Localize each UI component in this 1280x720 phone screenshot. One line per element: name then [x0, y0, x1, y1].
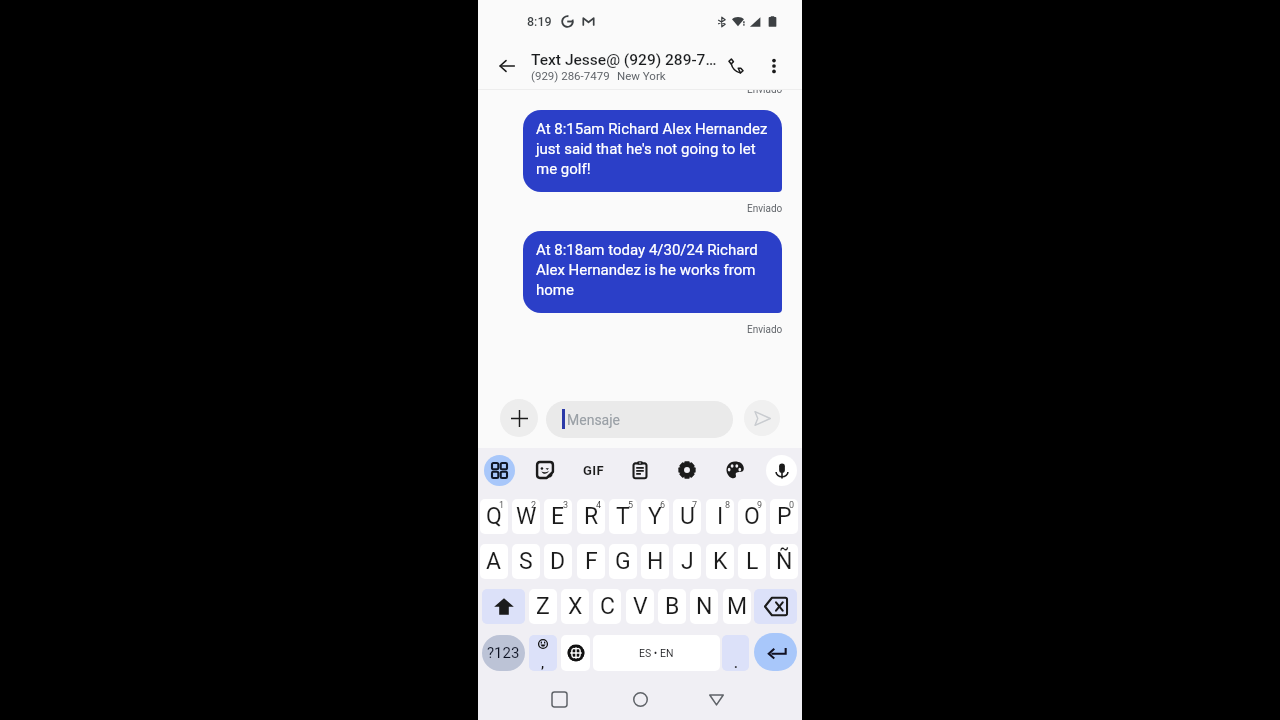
button[interactable]: GIF [578, 455, 608, 485]
staticText: 1 [499, 500, 505, 511]
button[interactable]: U [673, 499, 701, 534]
staticText: Ñ [776, 548, 793, 575]
button[interactable]: G [609, 544, 637, 579]
button[interactable]: Clipboard [625, 455, 655, 485]
staticText: New York [617, 69, 666, 82]
staticText: Mensaje [567, 412, 620, 428]
button[interactable]: Attach [500, 399, 538, 437]
button[interactable]: Shift [482, 589, 525, 624]
staticText: Enviado [747, 324, 783, 336]
button[interactable]: Ñ [770, 544, 798, 579]
button[interactable]: ES • EN [593, 635, 720, 671]
staticText: Z [536, 593, 550, 620]
button[interactable]: Home [623, 682, 657, 716]
button[interactable]: W [512, 499, 540, 534]
button[interactable]: Y [641, 499, 669, 534]
staticText: S [519, 548, 533, 575]
staticText: G [615, 548, 631, 575]
button[interactable]: F [577, 544, 605, 579]
button[interactable]: Sticker [530, 455, 560, 485]
button[interactable]: S [512, 544, 540, 579]
button[interactable]: N [690, 589, 718, 624]
button[interactable]: L [738, 544, 766, 579]
staticText: F [585, 548, 598, 575]
staticText: E [551, 503, 565, 530]
button[interactable]: Recents [542, 682, 576, 716]
button[interactable]: Backspace [754, 589, 797, 624]
button[interactable]: Q [480, 499, 508, 534]
staticText: 4 [596, 500, 602, 511]
staticText: 6 [660, 500, 666, 511]
staticText: T [616, 503, 630, 530]
staticText: M [727, 593, 748, 620]
staticText: . [734, 656, 738, 671]
staticText: At 8:18am today 4/30/24 Richard Alex Her… [536, 241, 771, 299]
staticText: I [717, 503, 724, 530]
button[interactable]: Settings [672, 455, 702, 485]
button[interactable]: H [641, 544, 669, 579]
button[interactable]: Emoji [529, 635, 557, 671]
button[interactable]: J [673, 544, 701, 579]
staticText: L [746, 548, 759, 575]
staticText: K [713, 548, 728, 575]
button[interactable]: X [561, 589, 589, 624]
button[interactable]: O [738, 499, 766, 534]
button[interactable]: K [706, 544, 734, 579]
staticText: 5 [628, 500, 634, 511]
staticText: J [681, 548, 694, 575]
staticText: W [516, 503, 537, 530]
button[interactable]: P [770, 499, 798, 534]
staticText: O [744, 503, 760, 530]
staticText: U [680, 503, 695, 530]
staticText: H [647, 548, 664, 575]
staticText: C [600, 593, 615, 620]
staticText: 3 [563, 500, 569, 511]
button[interactable]: D [544, 544, 572, 579]
staticText: N [696, 593, 713, 620]
button[interactable]: Send [744, 400, 780, 436]
staticText: Enviado [747, 203, 783, 215]
button[interactable]: Voice input [766, 455, 797, 486]
staticText: A [486, 548, 502, 575]
button[interactable]: B [658, 589, 686, 624]
button[interactable]: T [609, 499, 637, 534]
button[interactable]: Z [529, 589, 557, 624]
staticText: Text Jesse@ (929) 289-7... [531, 51, 717, 69]
button[interactable]: At 8:15am Richard Alex Hernandez just sa… [523, 110, 782, 192]
button[interactable]: Enter [754, 633, 797, 671]
staticText: 0 [789, 500, 795, 511]
button[interactable]: ?123 [482, 635, 525, 671]
button[interactable]: Change language [561, 635, 590, 671]
button[interactable]: R [577, 499, 605, 534]
staticText: R [584, 503, 599, 530]
staticText: , [541, 656, 545, 671]
button[interactable]: E [544, 499, 572, 534]
button[interactable]: Apps [484, 455, 515, 486]
button[interactable]: Mensaje [546, 401, 733, 438]
button[interactable]: A [480, 544, 508, 579]
staticText: V [633, 593, 648, 620]
staticText: P [777, 503, 792, 530]
staticText: ?123 [487, 644, 520, 662]
staticText: 2 [531, 500, 537, 511]
button[interactable]: C [593, 589, 621, 624]
button[interactable]: More options [755, 47, 793, 85]
staticText: At 8:15am Richard Alex Hernandez just sa… [536, 120, 771, 178]
staticText: Y [648, 503, 662, 530]
button[interactable]: . [722, 635, 749, 671]
staticText: 9 [757, 500, 763, 511]
staticText: (929) 286-7479 [531, 69, 610, 82]
button[interactable]: M [723, 589, 751, 624]
button[interactable]: Theme [720, 455, 750, 485]
button[interactable]: Call [717, 47, 755, 85]
staticText: Enviado [747, 90, 783, 96]
button[interactable]: Back [699, 682, 733, 716]
staticText: ES • EN [639, 647, 674, 659]
staticText: Q [486, 503, 502, 530]
button[interactable]: I [706, 499, 734, 534]
staticText: B [665, 593, 680, 620]
button[interactable]: Back [489, 48, 525, 84]
button[interactable]: At 8:18am today 4/30/24 Richard Alex Her… [523, 231, 782, 313]
button[interactable]: V [626, 589, 654, 624]
staticText: 7 [692, 500, 698, 511]
